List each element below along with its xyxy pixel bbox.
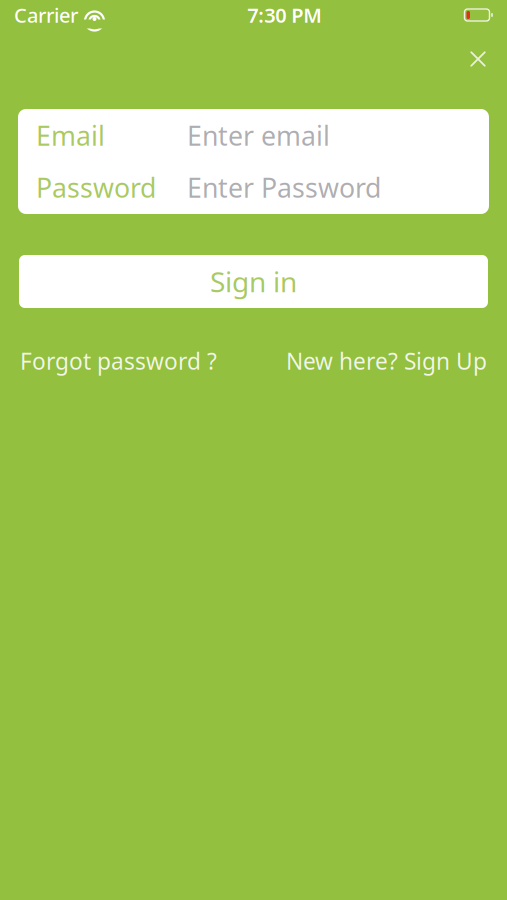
staticText: Sign in [210,263,297,300]
staticText: Email [36,118,105,153]
staticText: Password [36,170,156,205]
staticText: Forgot password ? [20,346,217,376]
staticText: Enter email [187,118,330,153]
button[interactable]: New here? Sign Up [286,346,487,376]
button[interactable]: Close [455,36,501,82]
staticText: New here? Sign Up [286,346,487,376]
staticText: 7:30 PM [247,2,322,28]
staticText: Enter Password [187,170,381,205]
button[interactable]: Forgot password ? [20,346,217,376]
button[interactable]: Sign in [19,255,488,308]
staticText: Carrier [14,2,78,28]
